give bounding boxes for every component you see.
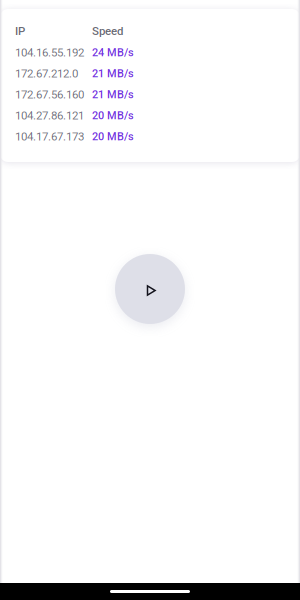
staticText: 172.67.56.160: [15, 88, 84, 101]
staticText: Speed: [92, 24, 123, 38]
staticText: 21 MB/s: [92, 67, 134, 80]
staticText: 20 MB/s: [92, 109, 134, 122]
staticText: 172.67.212.0: [15, 67, 78, 80]
staticText: 104.17.67.173: [15, 130, 84, 143]
staticText: 104.27.86.121: [15, 109, 84, 122]
staticText: IP: [15, 24, 25, 38]
staticText: 104.16.55.192: [15, 46, 84, 59]
staticText: 24 MB/s: [92, 46, 134, 59]
staticText: 21 MB/s: [92, 88, 134, 101]
staticText: 20 MB/s: [92, 130, 134, 143]
button[interactable]: Start speed test: [115, 254, 185, 324]
